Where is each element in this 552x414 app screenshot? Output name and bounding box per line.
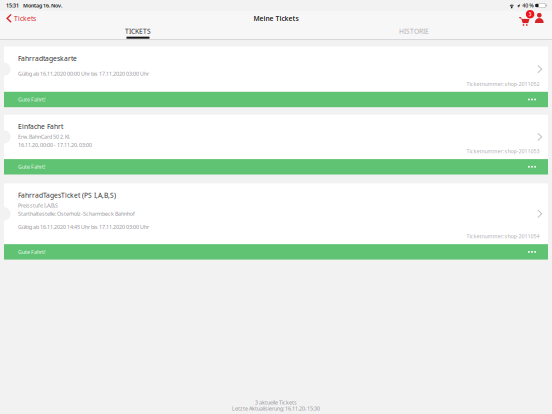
button[interactable]: TICKETS (0, 26, 276, 40)
staticText: Erw. BahnCard 50 2. Kl. (18, 133, 70, 140)
staticText: Tickets (14, 14, 36, 23)
staticText: Ticketnummer: shop-2011054 (466, 233, 539, 240)
staticText: Montag 16. Nov. (23, 2, 62, 9)
button[interactable]: Warenkorb (519, 10, 530, 27)
staticText: Einfache Fahrt (18, 122, 63, 131)
staticText: Gültig ab 16.11.2020 00:00 Uhr bis 17.11… (18, 70, 149, 77)
staticText: HISTORIE (399, 27, 429, 36)
staticText: Ticketnummer: shop-2011053 (466, 148, 539, 155)
staticText: Meine Tickets (253, 14, 298, 23)
button[interactable]: HISTORIE (276, 26, 552, 40)
button[interactable]: FahrradTagesTicket (PS I,A,B,S) (0, 183, 552, 260)
staticText: Starthaltestelle: Osterholz-Scharmbeck B… (18, 210, 135, 217)
staticText: Gute Fahrt! (18, 163, 45, 170)
staticText: Letzte Aktualisierung: 16.11.20, 15:30 (232, 405, 320, 412)
staticText: Preisstufe I,A,B,S (18, 202, 58, 209)
staticText: Gültig ab 16.11.2020 14:45 Uhr bis 17.11… (18, 223, 149, 230)
staticText: 16.11.20, 00:00 - 17.11.20, 03:00 (18, 141, 92, 148)
button[interactable]: Einfache Fahrt (0, 115, 552, 174)
staticText: 15:31 (6, 2, 19, 9)
staticText: Gute Fahrt! (18, 248, 45, 255)
staticText: FahrradTagesTicket (PS I,A,B,S) (18, 191, 116, 200)
button[interactable]: Fahrradtageskarte (0, 46, 552, 107)
button[interactable]: Konto (534, 10, 544, 27)
staticText: Fahrradtageskarte (18, 54, 77, 63)
staticText: 3 aktuelle Tickets (255, 399, 297, 406)
staticText: 40 % (522, 2, 534, 9)
staticText: TICKETS (125, 27, 151, 36)
staticText: Gute Fahrt! (18, 96, 45, 103)
button[interactable]: Tickets (0, 10, 44, 27)
staticText: Ticketnummer: shop-2011052 (466, 80, 539, 87)
staticText: 3 (529, 11, 532, 18)
